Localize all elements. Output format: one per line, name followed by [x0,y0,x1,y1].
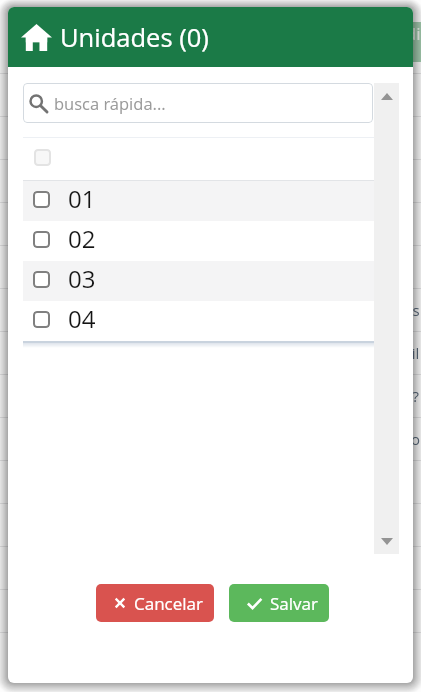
staticText: busca rápida... [54,92,166,114]
staticText: Adicionar [395,22,421,62]
staticText: Email [381,343,420,363]
button[interactable]: 02 [23,221,374,261]
button[interactable]: busca rápida... [23,83,373,123]
staticText: Confirmação? [323,386,420,406]
staticText: 01 [68,182,96,215]
button[interactable]: Scroll up [374,83,399,109]
button[interactable]: 04 [23,301,374,341]
staticText: Cancelar [134,592,203,615]
staticText: Salvar [270,592,318,615]
staticText: Descrição das ações [279,300,420,320]
staticText: Ativação [361,429,420,449]
staticText: 02 [68,222,96,255]
button[interactable]: Scroll down [374,528,399,554]
button[interactable]: Cancelar [96,584,214,622]
button[interactable]: 01 [23,181,374,221]
staticText: Unidades (0) [60,20,209,55]
staticText: 04 [68,302,96,335]
staticText: 03 [68,262,96,295]
button[interactable]: Salvar [229,584,329,622]
button[interactable]: 03 [23,261,374,301]
